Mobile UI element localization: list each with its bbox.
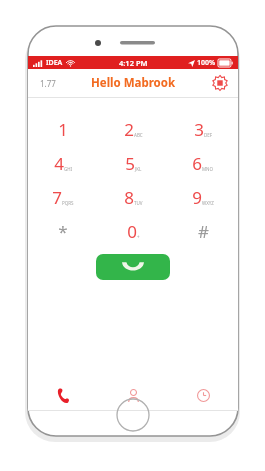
- staticText: Hello Mabrook: [91, 75, 176, 91]
- button[interactable]: Call: [96, 254, 170, 280]
- button[interactable]: 6: [168, 146, 238, 180]
- button[interactable]: 5: [98, 146, 168, 180]
- button[interactable]: Settings: [210, 73, 230, 93]
- button[interactable]: 1: [28, 112, 98, 146]
- staticText: 9: [192, 186, 202, 209]
- button[interactable]: 3: [168, 112, 238, 146]
- button[interactable]: *: [28, 214, 98, 248]
- staticText: 2: [124, 118, 134, 141]
- staticText: ABC: [134, 132, 143, 138]
- staticText: JKL: [135, 166, 142, 172]
- staticText: 8: [124, 186, 134, 209]
- staticText: 3: [194, 118, 204, 141]
- button[interactable]: 0: [98, 214, 168, 248]
- staticText: *: [58, 220, 68, 243]
- staticText: PQRS: [62, 200, 74, 206]
- staticText: TUV: [134, 200, 143, 206]
- staticText: 7: [52, 186, 62, 209]
- staticText: IDEA: [46, 58, 63, 68]
- staticText: GHI: [64, 166, 73, 172]
- button[interactable]: 9: [168, 180, 238, 214]
- button[interactable]: Keypad: [28, 380, 98, 410]
- button[interactable]: 2: [98, 112, 168, 146]
- staticText: 0: [127, 220, 137, 243]
- staticText: WXYZ: [202, 200, 214, 206]
- button[interactable]: Recents: [168, 380, 238, 410]
- button[interactable]: 7: [28, 180, 98, 214]
- staticText: 4:12 PM: [119, 58, 148, 68]
- staticText: #: [198, 220, 209, 243]
- button[interactable]: 4: [28, 146, 98, 180]
- staticText: +: [137, 234, 140, 240]
- staticText: 5: [125, 152, 135, 175]
- staticText: 4: [54, 152, 64, 175]
- staticText: 100%: [197, 58, 216, 68]
- staticText: MNO: [202, 166, 214, 172]
- button[interactable]: 8: [98, 180, 168, 214]
- staticText: 6: [192, 152, 202, 175]
- staticText: 1.77: [40, 78, 56, 89]
- button[interactable]: Contacts: [98, 380, 168, 410]
- staticText: 1: [58, 118, 68, 141]
- staticText: DEF: [204, 132, 213, 138]
- button[interactable]: #: [168, 214, 238, 248]
